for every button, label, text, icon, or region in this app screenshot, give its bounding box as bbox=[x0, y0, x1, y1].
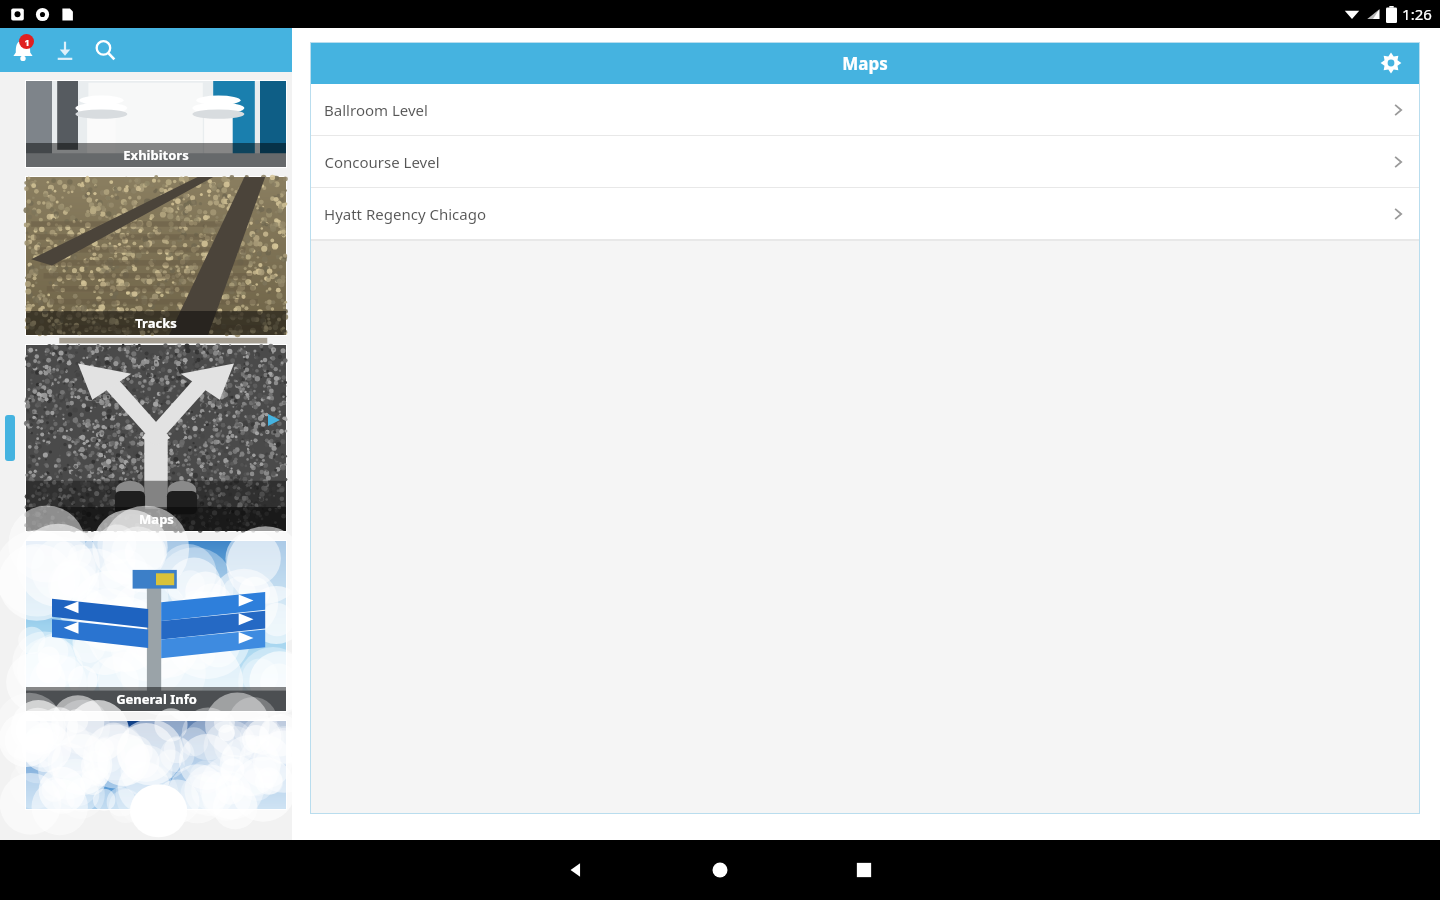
button[interactable]: Exhibitors bbox=[26, 81, 286, 167]
button[interactable]: Concourse Level bbox=[310, 136, 1420, 188]
button[interactable]: Notifications bbox=[8, 35, 38, 65]
staticText: Maps bbox=[842, 52, 888, 75]
button[interactable]: Recents bbox=[847, 853, 881, 887]
button[interactable]: Ballroom Level bbox=[310, 84, 1420, 136]
button[interactable]: Download bbox=[52, 37, 78, 63]
button[interactable]: Search bbox=[92, 37, 118, 63]
button[interactable]: Back bbox=[559, 853, 593, 887]
staticText: Ballroom Level bbox=[324, 100, 428, 120]
staticText: 1:26 bbox=[1402, 4, 1432, 24]
button[interactable]: Home bbox=[703, 853, 737, 887]
staticText: Exhibitors bbox=[123, 146, 189, 164]
button[interactable]: General Info bbox=[26, 541, 286, 711]
staticText: 1 bbox=[24, 36, 30, 48]
staticText: Maps bbox=[139, 510, 174, 528]
staticText: Concourse Level bbox=[324, 152, 440, 172]
button[interactable]: Tracks bbox=[26, 177, 286, 335]
staticText: Hyatt Regency Chicago bbox=[324, 204, 486, 224]
button[interactable]: Hyatt Regency Chicago bbox=[310, 188, 1420, 240]
button[interactable] bbox=[26, 721, 286, 809]
staticText: General Info bbox=[116, 690, 197, 708]
button[interactable]: Settings bbox=[1378, 50, 1404, 76]
button[interactable]: Maps bbox=[26, 345, 286, 531]
staticText: Tracks bbox=[135, 314, 177, 332]
